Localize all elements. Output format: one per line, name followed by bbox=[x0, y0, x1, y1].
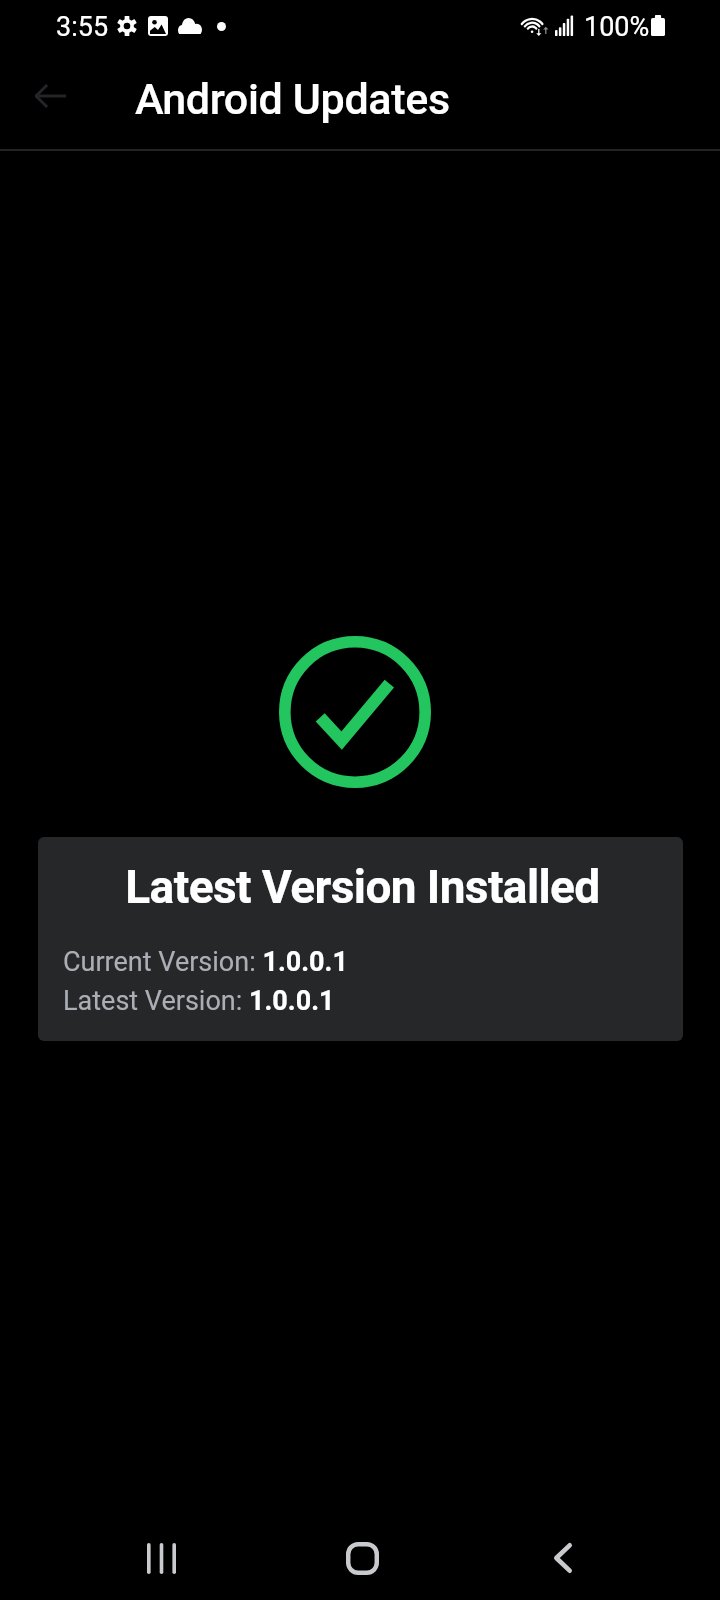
button[interactable]: Navigate back bbox=[22, 68, 78, 124]
button[interactable]: Back bbox=[519, 1514, 607, 1600]
button[interactable]: Home bbox=[318, 1514, 406, 1600]
staticText: Android Updates bbox=[135, 74, 450, 124]
staticText: Current Version: 1.0.0.1 bbox=[63, 946, 348, 978]
button[interactable]: Latest Version Installed bbox=[38, 837, 683, 1041]
staticText: Latest Version Installed bbox=[40, 860, 683, 914]
button[interactable]: Recent apps bbox=[117, 1514, 205, 1600]
staticText: 3:55 bbox=[56, 11, 109, 43]
staticText: Latest Version: 1.0.0.1 bbox=[63, 985, 335, 1017]
staticText: 100% bbox=[584, 11, 650, 43]
